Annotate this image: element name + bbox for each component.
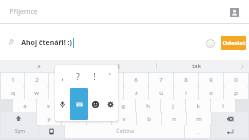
button[interactable]: y bbox=[37, 112, 61, 125]
button[interactable]: s bbox=[37, 99, 60, 112]
button[interactable]: 4 bbox=[74, 73, 98, 86]
staticText: 2 bbox=[35, 76, 39, 84]
staticText: n bbox=[172, 115, 176, 123]
button[interactable]: 7 bbox=[149, 73, 173, 86]
staticText: ! bbox=[93, 71, 96, 82]
staticText: Ahoj čtenáři! :) bbox=[21, 38, 72, 48]
button[interactable]: r bbox=[74, 86, 98, 99]
button[interactable]: j bbox=[161, 99, 185, 112]
button[interactable]: 8 bbox=[174, 73, 198, 86]
staticText: k bbox=[196, 102, 200, 110]
button[interactable]: ! bbox=[86, 65, 102, 87]
button[interactable]: i bbox=[174, 86, 198, 99]
staticText: :-) bbox=[114, 62, 120, 70]
button[interactable]: Přiložit bbox=[5, 36, 19, 50]
button[interactable]: Nastavení bbox=[103, 87, 118, 121]
button[interactable]: z bbox=[124, 86, 148, 99]
button[interactable]: q bbox=[1, 86, 24, 99]
staticText: u bbox=[159, 89, 163, 97]
button[interactable]: Další návrhy bbox=[235, 60, 249, 72]
button[interactable]: n bbox=[162, 112, 186, 125]
staticText: ? bbox=[76, 71, 80, 82]
button[interactable]: ? bbox=[70, 65, 86, 87]
staticText: i bbox=[185, 89, 187, 97]
button[interactable]: l bbox=[211, 99, 235, 112]
button[interactable]: Čeština bbox=[65, 125, 184, 138]
staticText: j bbox=[172, 102, 174, 110]
button[interactable]: , bbox=[55, 65, 70, 87]
button[interactable]: a bbox=[0, 60, 77, 72]
staticText: . bbox=[197, 128, 199, 136]
button[interactable]: Smazat bbox=[212, 112, 248, 125]
button[interactable]: 1 bbox=[1, 73, 24, 86]
button[interactable]: Hlasový vstup bbox=[55, 87, 70, 121]
staticText: Odeslat bbox=[222, 39, 246, 47]
button[interactable]: d bbox=[61, 99, 85, 112]
button[interactable]: 9 bbox=[199, 73, 223, 86]
button[interactable]: Sym bbox=[1, 125, 38, 138]
button[interactable]: a bbox=[13, 99, 36, 112]
staticText: a bbox=[37, 62, 41, 70]
staticText: 8 bbox=[184, 76, 188, 84]
button[interactable]: w bbox=[25, 86, 48, 99]
staticText: y bbox=[47, 115, 51, 123]
button[interactable]: Vybrat kontakt bbox=[225, 3, 243, 21]
button[interactable]: Emotikony bbox=[202, 35, 218, 51]
staticText: , bbox=[61, 71, 64, 82]
button[interactable]: b bbox=[137, 112, 161, 125]
staticText: v bbox=[122, 115, 126, 123]
staticText: h bbox=[146, 102, 150, 110]
staticText: z bbox=[135, 89, 138, 97]
staticText: Čeština bbox=[116, 128, 134, 135]
staticText: a bbox=[23, 102, 27, 110]
button[interactable]: Příjemce bbox=[0, 0, 249, 23]
button[interactable]: 2 bbox=[25, 73, 48, 86]
button[interactable]: Klávesnice bbox=[70, 88, 88, 120]
button[interactable]: t bbox=[99, 86, 123, 99]
button[interactable]: tak bbox=[157, 60, 235, 72]
button[interactable]: h bbox=[136, 99, 160, 112]
button[interactable]: x bbox=[62, 112, 86, 125]
button[interactable]: g bbox=[111, 99, 135, 112]
staticText: x bbox=[72, 115, 76, 123]
staticText: tak bbox=[192, 62, 201, 70]
staticText: g bbox=[121, 102, 125, 110]
button[interactable]: Velká písmena bbox=[1, 112, 36, 125]
button[interactable]: 3 bbox=[49, 73, 73, 86]
button[interactable]: Enter bbox=[211, 125, 248, 138]
staticText: 7 bbox=[159, 76, 163, 84]
button[interactable]: c bbox=[87, 112, 111, 125]
staticText: w bbox=[34, 89, 39, 97]
staticText: q bbox=[11, 89, 15, 97]
button[interactable]: v bbox=[112, 112, 136, 125]
staticText: 1 bbox=[11, 76, 15, 84]
button[interactable]: m bbox=[187, 112, 211, 125]
staticText: m bbox=[196, 115, 202, 123]
staticText: 3 bbox=[59, 76, 63, 84]
staticText: Sym bbox=[15, 128, 25, 135]
staticText: 0 bbox=[234, 76, 238, 84]
button[interactable]: o bbox=[199, 86, 223, 99]
button[interactable]: 6 bbox=[124, 73, 148, 86]
button[interactable]: Nastavení klávesnice bbox=[39, 125, 64, 138]
staticText: c bbox=[98, 115, 101, 123]
button[interactable]: Odeslat bbox=[221, 36, 246, 50]
button[interactable]: Emotikony bbox=[88, 87, 103, 121]
button[interactable]: 5 bbox=[99, 73, 123, 86]
staticText: b bbox=[147, 115, 151, 123]
button[interactable]: 0 bbox=[224, 73, 248, 86]
button[interactable]: u bbox=[149, 86, 173, 99]
button[interactable]: f bbox=[86, 99, 110, 112]
button[interactable]: p bbox=[224, 86, 248, 99]
staticText: Příjemce bbox=[9, 7, 38, 17]
button[interactable]: k bbox=[186, 99, 210, 112]
staticText: s bbox=[47, 102, 50, 110]
button[interactable]: :-) bbox=[78, 60, 156, 72]
staticText: 6 bbox=[134, 76, 138, 84]
button[interactable]: ' bbox=[102, 65, 118, 87]
button[interactable]: e bbox=[49, 86, 73, 99]
